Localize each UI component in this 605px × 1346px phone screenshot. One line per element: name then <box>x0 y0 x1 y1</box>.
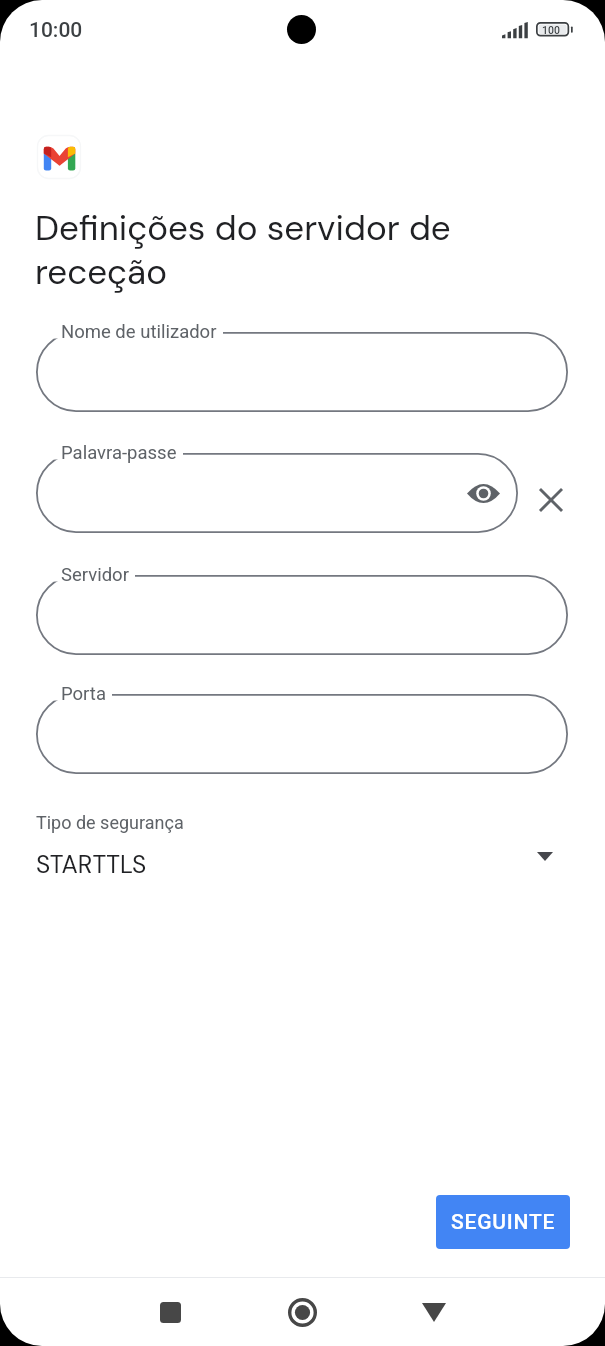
button[interactable]: SEGUINTE <box>436 1195 570 1249</box>
staticText: Palavra-passe <box>61 442 177 464</box>
staticText: 100 <box>542 24 560 36</box>
staticText: Nome de utilizador <box>61 321 217 343</box>
button[interactable]: Servidor <box>36 575 568 655</box>
button[interactable]: Mostrar palavra-passe <box>461 471 505 515</box>
staticText: Tipo de segurança <box>36 812 184 833</box>
button[interactable]: Limpar <box>527 476 575 524</box>
button[interactable]: Recentes <box>110 1279 230 1346</box>
button[interactable]: Início <box>242 1279 362 1346</box>
staticText: Porta <box>61 683 106 705</box>
staticText: SEGUINTE <box>451 1210 556 1235</box>
staticText: Servidor <box>61 564 129 586</box>
button[interactable]: Voltar <box>374 1279 494 1346</box>
button[interactable]: Porta <box>36 694 568 774</box>
button[interactable]: Palavra-passe <box>36 453 518 533</box>
staticText: Definições do servidor de receção <box>35 205 467 295</box>
button[interactable]: Tipo de segurança <box>0 805 605 891</box>
staticText: 10:00 <box>29 18 83 43</box>
staticText: STARTTLS <box>36 849 147 881</box>
button[interactable]: Nome de utilizador <box>36 332 568 412</box>
